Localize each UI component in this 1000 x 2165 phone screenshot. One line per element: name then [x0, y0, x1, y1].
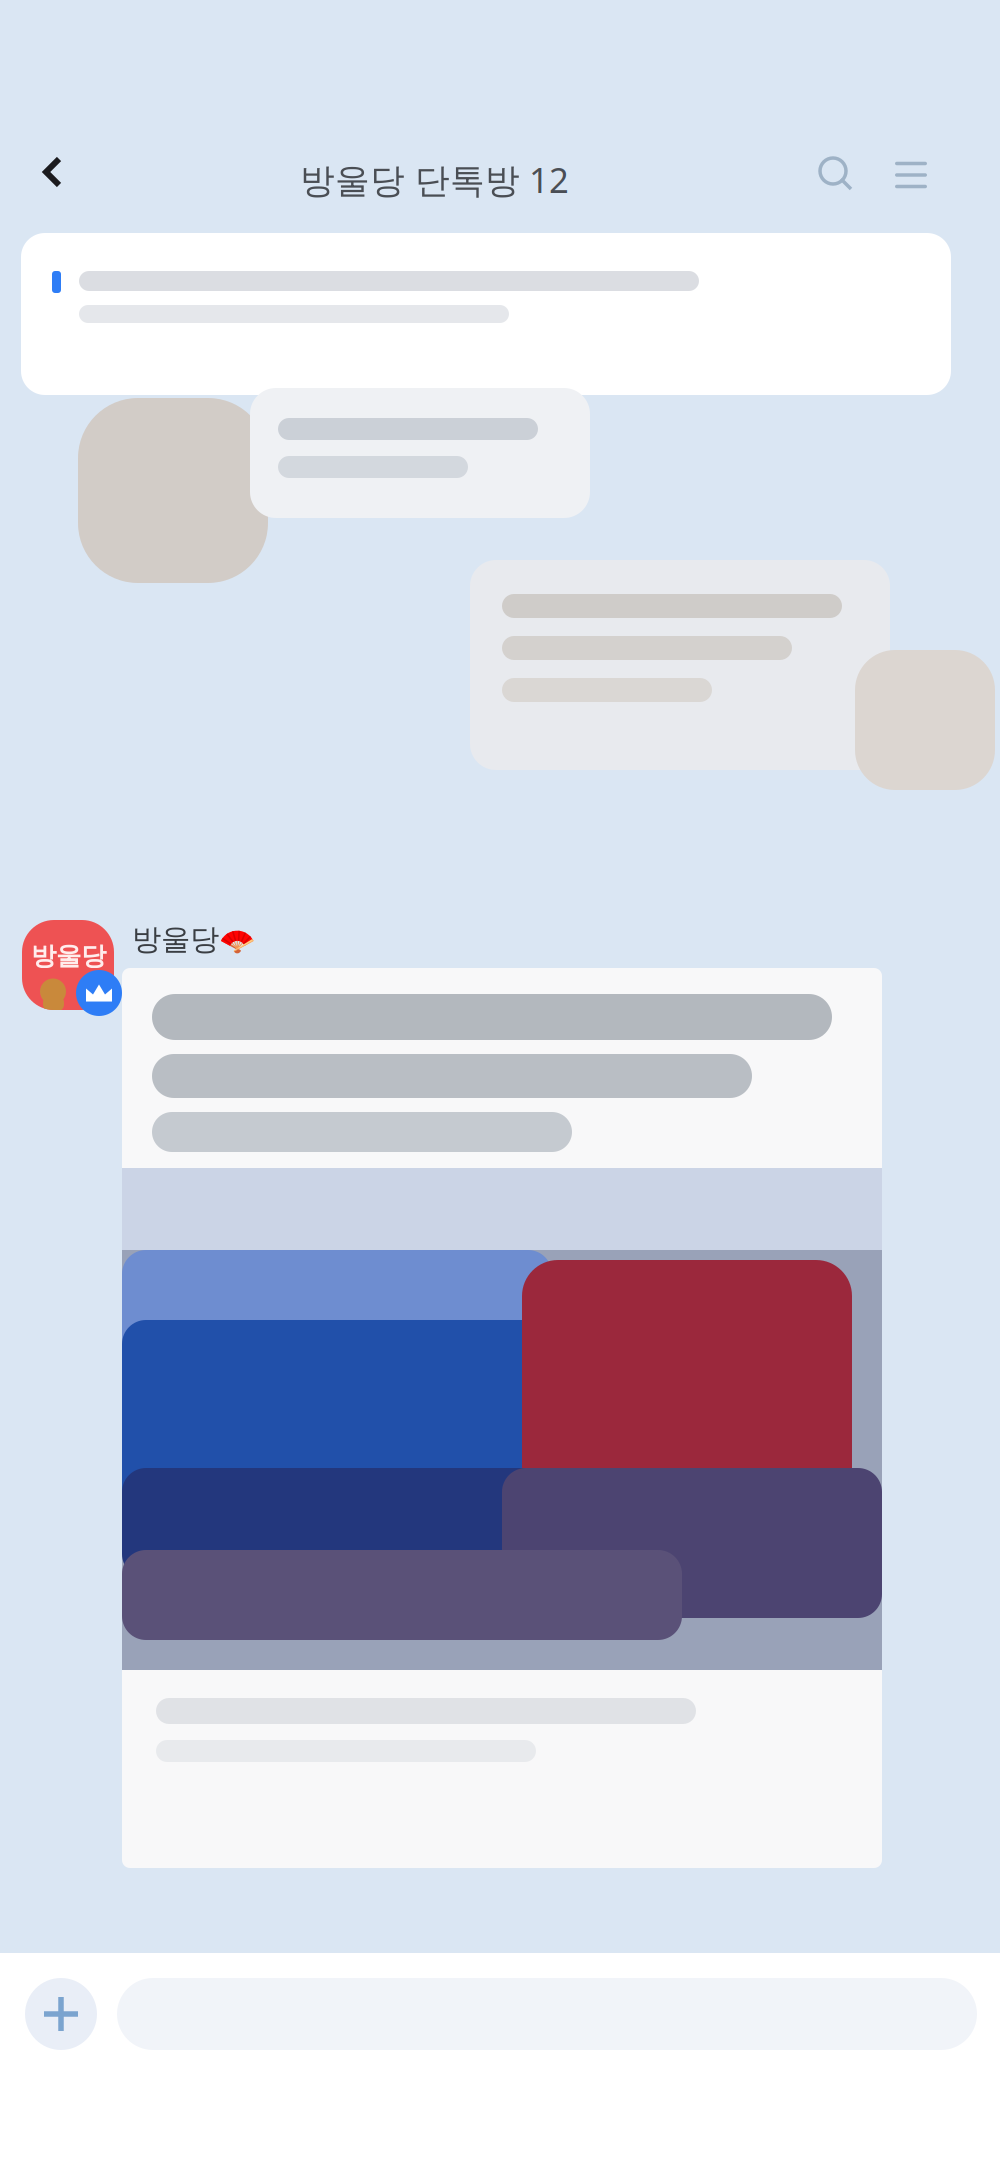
button[interactable]: Pinned notice	[21, 233, 951, 395]
staticText: 방울당	[31, 940, 106, 972]
button[interactable]: Back	[24, 142, 81, 202]
button[interactable]: Search	[820, 158, 854, 192]
button[interactable]: Add attachment	[25, 1978, 97, 2050]
staticText: 방울당 단톡방 12	[300, 156, 569, 203]
button[interactable]: Menu	[894, 158, 928, 192]
button[interactable]: Shared post	[122, 968, 882, 1868]
staticText: 방울당🪭	[132, 921, 256, 958]
